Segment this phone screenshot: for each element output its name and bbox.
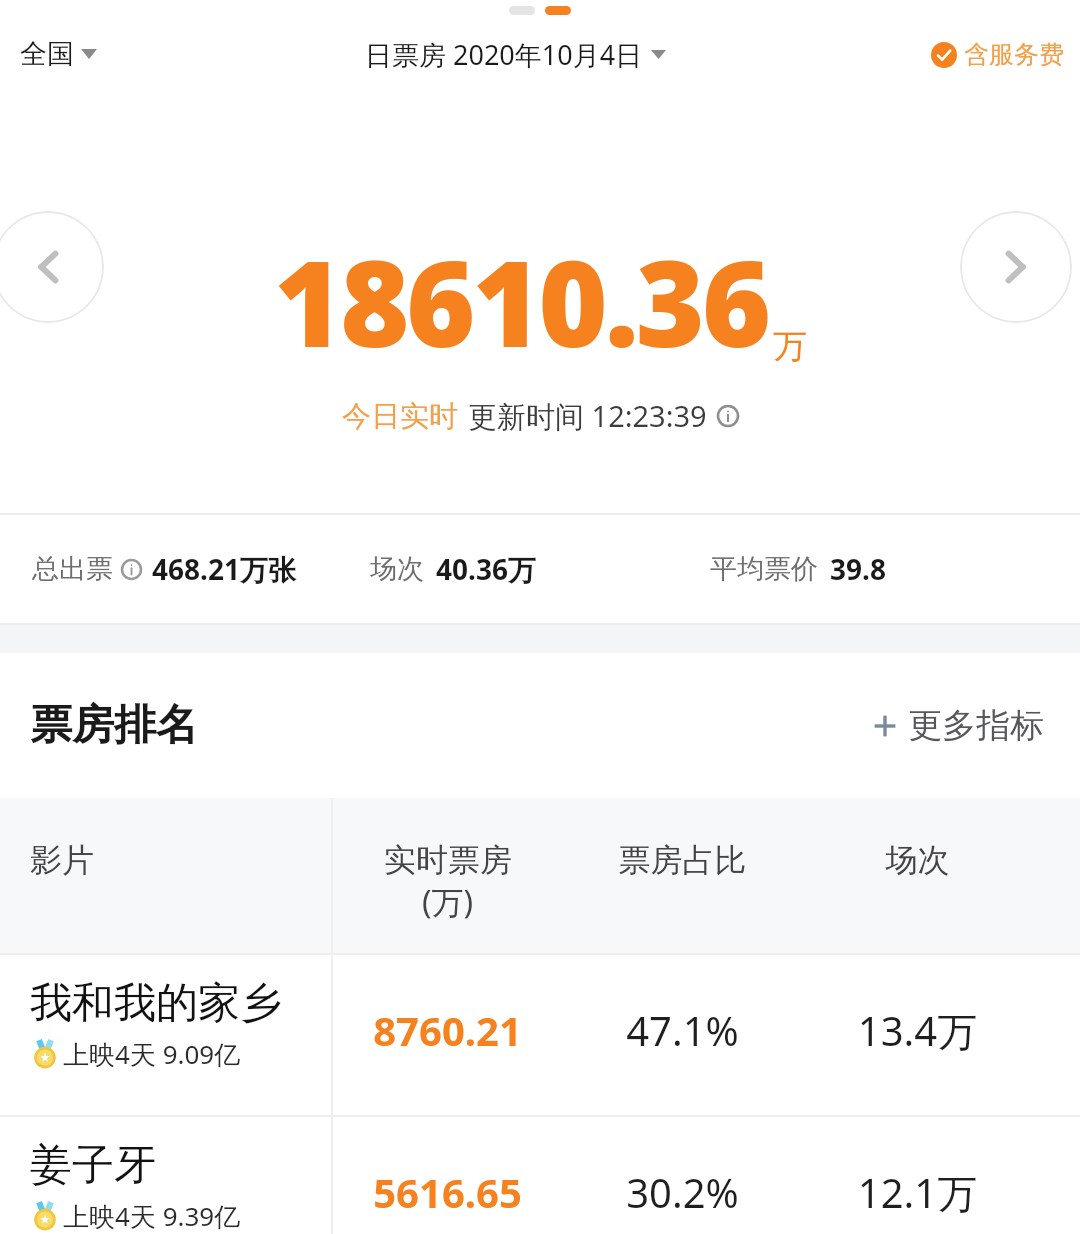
staticText: 47.1% — [565, 1003, 800, 1057]
staticText: 场次 — [800, 840, 1035, 880]
button[interactable]: 更多指标 — [866, 696, 1050, 755]
button[interactable]: Next day — [960, 211, 1072, 323]
staticText: 13.4万 — [800, 1003, 1035, 1058]
staticText: 30.2% — [565, 1165, 800, 1219]
staticText: 40.36万 — [436, 550, 536, 588]
staticText: 总出票 — [32, 552, 113, 586]
staticText: 上映4天 9.09亿 — [63, 1036, 241, 1072]
staticText: 8760.21 — [330, 1003, 565, 1057]
staticText: 姜子牙 — [30, 1139, 156, 1192]
staticText: 场次 — [370, 552, 424, 586]
staticText: 票房占比 — [565, 840, 800, 880]
button[interactable]: 日票房 2020年10月4日 — [359, 30, 672, 79]
button[interactable]: 全国 — [10, 31, 107, 77]
staticText: 票房排名 — [30, 699, 198, 752]
staticText: (万) — [422, 880, 474, 924]
staticText: 含服务费 — [964, 39, 1064, 70]
staticText: 更新时间 12:23:39 — [468, 396, 707, 436]
button[interactable]: Previous day — [0, 211, 104, 323]
staticText: 上映4天 9.39亿 — [63, 1198, 241, 1234]
staticText: 影片 — [30, 840, 94, 880]
staticText: 今日实时 — [342, 398, 458, 435]
button[interactable]: 姜子牙 — [0, 1117, 1080, 1234]
staticText: 更多指标 — [908, 704, 1044, 747]
staticText: 全国 — [20, 37, 74, 71]
staticText: 平均票价 — [710, 552, 818, 586]
button[interactable]: 我和我的家乡 — [0, 955, 1080, 1115]
staticText: 我和我的家乡 — [30, 977, 282, 1030]
button[interactable]: 含服务费 — [925, 33, 1070, 76]
staticText: 12.1万 — [800, 1165, 1035, 1220]
button[interactable]: 今日实时 — [338, 392, 743, 440]
staticText: 实时票房 — [384, 840, 512, 880]
staticText: 日票房 2020年10月4日 — [365, 36, 643, 73]
staticText: 468.21万张 — [152, 550, 296, 588]
staticText: 18610.36 — [274, 221, 769, 382]
staticText: 39.8 — [830, 550, 886, 588]
staticText: 万 — [773, 325, 807, 368]
staticText: 5616.65 — [330, 1165, 565, 1219]
